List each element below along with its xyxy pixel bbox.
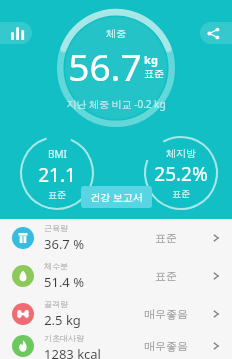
staticText: 골격량 <box>44 299 68 309</box>
staticText: 표준 <box>48 189 66 200</box>
staticText: 표준 <box>172 188 190 199</box>
button[interactable]: 골격량 <box>0 295 232 333</box>
button[interactable]: 체수분 <box>0 257 232 295</box>
staticText: 표준 <box>155 231 177 245</box>
staticText: 근육량 <box>44 223 68 233</box>
staticText: 체지방 <box>166 147 196 160</box>
button[interactable]: 기초대사량 <box>0 333 232 359</box>
staticText: 2.5 kg <box>44 311 81 329</box>
button[interactable]: 체중 <box>57 9 175 127</box>
staticText: 21.1 <box>38 162 76 188</box>
staticText: 매우좋음 <box>144 339 188 353</box>
staticText: 1283 kcal <box>44 345 101 359</box>
staticText: 매우좋음 <box>144 307 188 321</box>
button[interactable]: Chart <box>0 22 32 44</box>
staticText: kg <box>144 52 158 67</box>
staticText: 기초대사량 <box>44 333 84 343</box>
staticText: 체중 <box>106 27 126 40</box>
button[interactable]: 체지방 <box>144 136 218 210</box>
button[interactable]: Share <box>200 22 232 44</box>
staticText: 56.7 <box>68 41 142 91</box>
staticText: 표준 <box>144 67 164 80</box>
staticText: BMI <box>48 147 67 161</box>
staticText: 건강 보고서 <box>90 190 143 204</box>
button[interactable]: 건강 보고서 <box>81 186 152 208</box>
staticText: 표준 <box>155 269 177 283</box>
button[interactable]: 근육량 <box>0 219 232 257</box>
staticText: 체수분 <box>44 261 68 271</box>
staticText: 지난 체중 비교 -0.2 kg <box>66 97 166 111</box>
button[interactable]: BMI <box>20 136 94 210</box>
staticText: 25.2% <box>154 161 208 187</box>
staticText: 51.4 % <box>44 273 84 291</box>
staticText: 36.7 % <box>44 235 84 253</box>
